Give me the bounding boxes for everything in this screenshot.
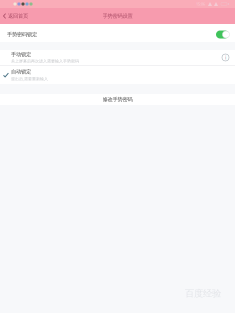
staticText: 15:06 — [196, 1, 205, 7]
staticText: 百度经验 — [185, 287, 221, 299]
staticText: 退出后,需要重新输入 — [11, 76, 48, 81]
staticText: 修改手势密码 — [102, 96, 132, 103]
staticText: 自动锁定 — [11, 69, 31, 75]
staticText: i — [225, 54, 226, 61]
button[interactable]: 手动锁定 — [0, 50, 235, 65]
button[interactable]: 返回首页 — [0, 8, 32, 24]
staticText: 手势密码锁定 — [7, 31, 37, 38]
button[interactable]: 手势密码锁定 — [0, 24, 235, 42]
staticText: 返回首页 — [8, 13, 28, 19]
button[interactable]: 自动锁定 — [0, 66, 235, 84]
staticText: 关上屏幕后再次进入需要输入手势密码 — [11, 59, 79, 64]
button[interactable]: 修改手势密码 — [0, 94, 235, 105]
staticText: 手动锁定 — [11, 51, 31, 58]
staticText: 手势密码设置 — [102, 13, 132, 19]
